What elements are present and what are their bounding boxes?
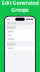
staticText: Group 1 (8, 27, 14, 28)
button[interactable]: Group 2 (7, 43, 16, 46)
staticText: › (31, 46, 32, 50)
staticText: › (31, 30, 32, 33)
staticText: Group 2 (8, 43, 14, 45)
button[interactable]: › (6, 37, 33, 41)
button[interactable]: › (6, 34, 33, 37)
button[interactable]: › (6, 30, 33, 33)
staticText: Search (10, 22, 16, 24)
button[interactable]: › (6, 46, 33, 50)
staticText: Edit Generated (1, 0, 38, 6)
staticText: Groups (11, 6, 29, 13)
button[interactable]: Group 1 (7, 26, 16, 29)
button[interactable]: Search (6, 22, 33, 25)
staticText: › (31, 34, 32, 37)
staticText: 9:41 (7, 18, 10, 20)
